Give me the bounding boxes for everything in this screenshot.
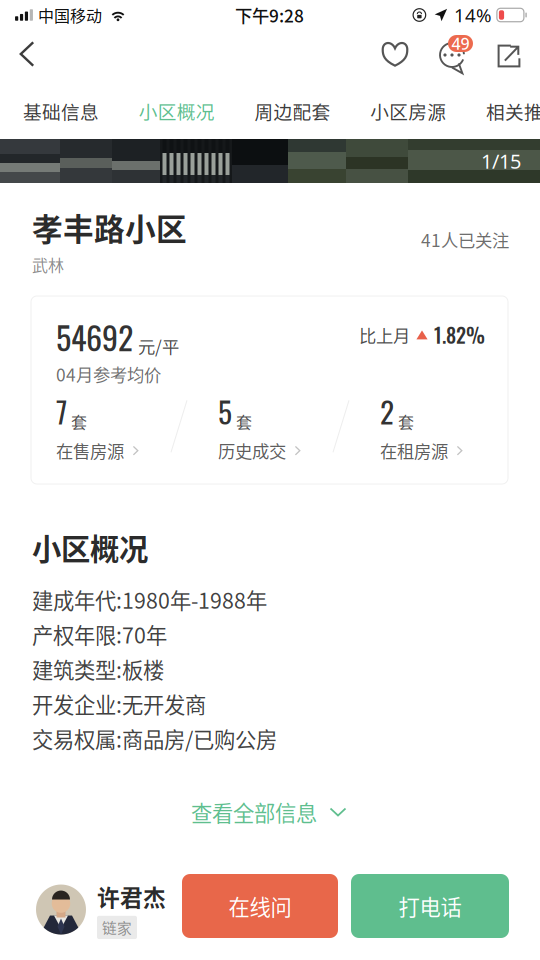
staticText: 中国移动 <box>38 3 102 27</box>
staticText: 在售房源 <box>56 438 124 463</box>
staticText: 打电话 <box>398 891 461 921</box>
staticText: 元/平 <box>138 333 179 358</box>
button[interactable]: Share <box>489 34 529 78</box>
button[interactable]: 2 <box>380 389 464 463</box>
button[interactable]: Comments <box>439 35 479 77</box>
button[interactable]: 打电话 <box>351 874 509 938</box>
staticText: 孝丰路小区 <box>32 205 187 249</box>
staticText: 武林 <box>32 253 64 276</box>
staticText: 1.82% <box>434 320 485 350</box>
staticText: 小区概况 <box>32 526 148 568</box>
staticText: 04月参考均价 <box>56 361 161 386</box>
button[interactable]: 小区房源 <box>371 91 445 131</box>
staticText: 开发企业:无开发商 <box>32 688 206 719</box>
staticText: 查看全部信息 <box>191 797 317 827</box>
staticText: 基础信息 <box>23 97 99 124</box>
staticText: 套 <box>236 410 252 433</box>
staticText: 1/15 <box>481 148 521 174</box>
staticText: 许君杰 <box>97 880 166 913</box>
staticText: 套 <box>71 410 87 433</box>
staticText: 49 <box>451 33 469 54</box>
staticText: 54692 <box>56 313 133 360</box>
staticText: 历史成交 <box>218 438 286 463</box>
staticText: 套 <box>398 410 414 433</box>
button[interactable]: 查看全部信息 <box>191 794 347 830</box>
staticText: 41人已关注 <box>421 227 509 252</box>
button[interactable]: Back <box>5 32 49 76</box>
staticText: 小区概况 <box>139 97 215 124</box>
button[interactable]: 基础信息 <box>24 91 98 131</box>
staticText: 产权年限:70年 <box>32 619 167 650</box>
button[interactable]: 周边配套 <box>255 91 329 131</box>
staticText: 小区房源 <box>370 97 446 124</box>
staticText: 2 <box>380 389 394 433</box>
staticText: 在租房源 <box>380 438 448 463</box>
button[interactable]: 小区概况 <box>140 91 214 131</box>
button[interactable]: Favorite <box>374 32 416 76</box>
staticText: 周边配套 <box>254 97 330 124</box>
button[interactable]: 许君杰 <box>36 880 166 939</box>
button[interactable]: 在线问 <box>182 874 338 938</box>
staticText: 链家 <box>102 917 132 938</box>
staticText: 交易权属:商品房/已购公房 <box>32 723 277 754</box>
staticText: 7 <box>56 389 67 433</box>
staticText: 建成年代:1980年-1988年 <box>32 584 267 615</box>
staticText: 建筑类型:板楼 <box>32 653 164 684</box>
staticText: 下午9:28 <box>235 2 304 28</box>
staticText: 相关推荐 <box>486 97 540 124</box>
staticText: 在线问 <box>228 891 291 921</box>
button[interactable]: 5 <box>218 389 302 463</box>
button[interactable]: 相关推荐 <box>487 91 540 131</box>
staticText: 5 <box>218 389 232 433</box>
staticText: 比上月 <box>359 322 410 347</box>
button[interactable]: 7 <box>56 389 140 463</box>
staticText: 14% <box>454 3 492 27</box>
